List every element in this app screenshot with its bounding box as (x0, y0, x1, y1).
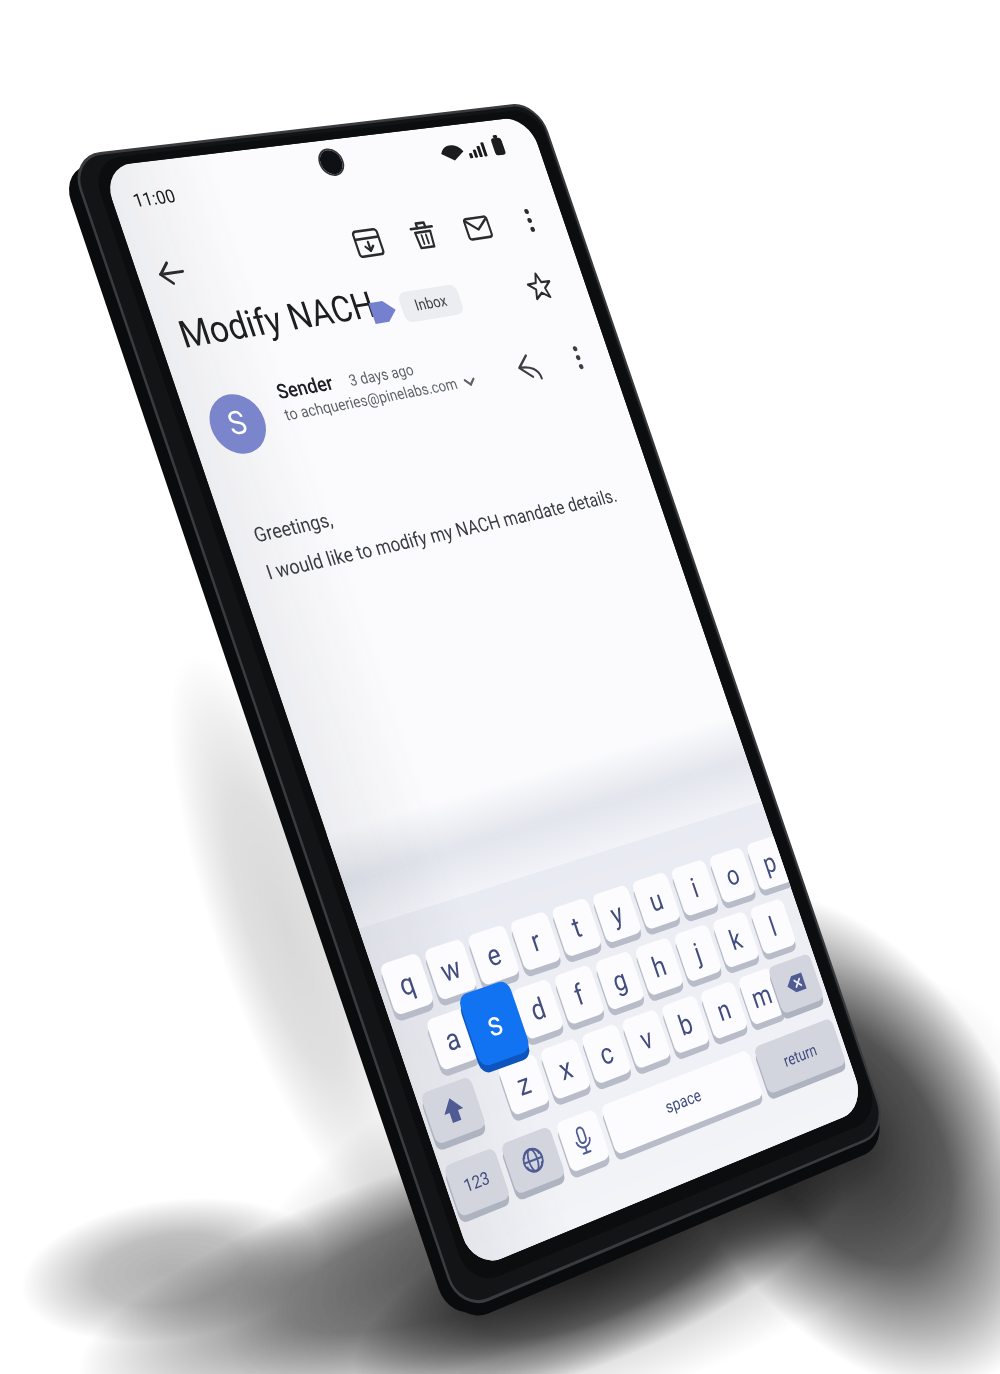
button[interactable] (0, 0, 1000, 1374)
